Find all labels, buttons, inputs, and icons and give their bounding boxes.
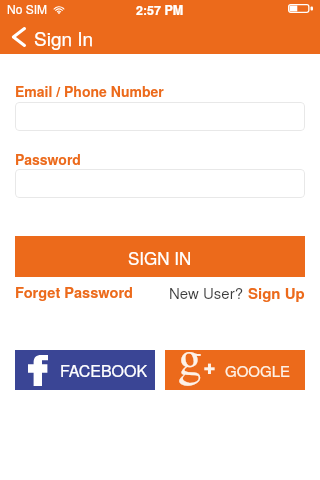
staticText: g bbox=[178, 350, 202, 364]
staticText: GOOGLE bbox=[225, 360, 291, 381]
button[interactable]: SIGN IN bbox=[15, 236, 305, 277]
staticText: Password bbox=[15, 149, 81, 169]
button[interactable] bbox=[15, 169, 305, 198]
staticText: Forget Password bbox=[15, 282, 134, 303]
staticText: New User? bbox=[169, 282, 248, 303]
staticText: FACEBOOK bbox=[60, 359, 148, 382]
staticText: Sign Up bbox=[248, 282, 305, 303]
staticText: 2:57 PM bbox=[136, 1, 184, 19]
staticText: Email / Phone Number bbox=[15, 81, 164, 101]
button[interactable]: g bbox=[165, 350, 305, 390]
other: Back bbox=[11, 27, 26, 47]
staticText: Sign In bbox=[34, 24, 94, 51]
staticText: No SIM bbox=[7, 0, 48, 17]
button[interactable]: Back bbox=[0, 20, 320, 54]
button[interactable]: FACEBOOK bbox=[15, 350, 155, 390]
button[interactable] bbox=[15, 102, 305, 131]
staticText: SIGN IN bbox=[128, 245, 192, 269]
button[interactable]: Forget Password bbox=[15, 282, 134, 303]
button[interactable]: New User? bbox=[169, 282, 305, 303]
